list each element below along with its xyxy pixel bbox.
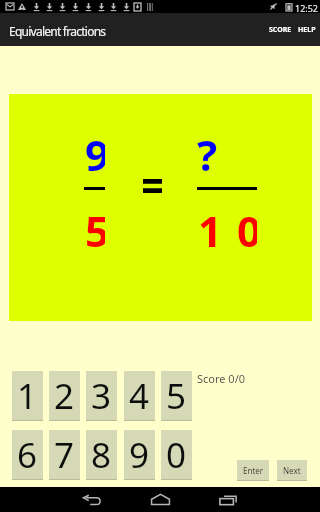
button[interactable]: Enter — [237, 460, 269, 481]
button[interactable]: SCORE — [264, 20, 296, 40]
button[interactable]: 9 — [124, 430, 155, 480]
staticText: 9 — [85, 126, 105, 174]
staticText: 5 — [85, 202, 105, 250]
button[interactable]: 4 — [124, 371, 155, 421]
staticText: Score 0/0 — [197, 371, 246, 386]
staticText: 0 — [166, 431, 187, 479]
staticText: Enter — [243, 465, 264, 476]
button[interactable]: Recent apps — [206, 487, 250, 512]
button[interactable]: 8 — [86, 430, 117, 480]
button[interactable]: 5 — [161, 371, 192, 421]
staticText: 1 — [17, 372, 38, 420]
staticText: 7 — [54, 431, 75, 479]
button[interactable]: Back — [70, 487, 114, 512]
button[interactable]: 0 — [161, 430, 192, 480]
button[interactable]: 1 — [12, 371, 43, 421]
button[interactable]: 6 — [12, 430, 43, 480]
staticText: 2 — [54, 372, 75, 420]
staticText: Next — [283, 465, 301, 476]
staticText: 9 — [129, 431, 150, 479]
button[interactable]: 3 — [86, 371, 117, 421]
staticText: SCORE — [269, 25, 292, 35]
button[interactable]: Next — [277, 460, 307, 481]
staticText: 4 — [129, 372, 150, 420]
staticText: 0 — [237, 202, 257, 250]
staticText: Equivalent fractions — [9, 23, 106, 39]
staticText: 5 — [166, 372, 187, 420]
staticText: ? — [197, 126, 217, 174]
staticText: 1 — [198, 202, 218, 250]
button[interactable]: 2 — [49, 371, 80, 421]
staticText: 12:52 — [295, 2, 319, 14]
staticText: 6 — [17, 431, 38, 479]
button[interactable]: 7 — [49, 430, 80, 480]
staticText: 8 — [91, 431, 112, 479]
button[interactable]: HELP — [295, 20, 319, 40]
button[interactable]: Home — [138, 487, 182, 512]
staticText: 3 — [91, 372, 112, 420]
staticText: HELP — [298, 25, 316, 35]
